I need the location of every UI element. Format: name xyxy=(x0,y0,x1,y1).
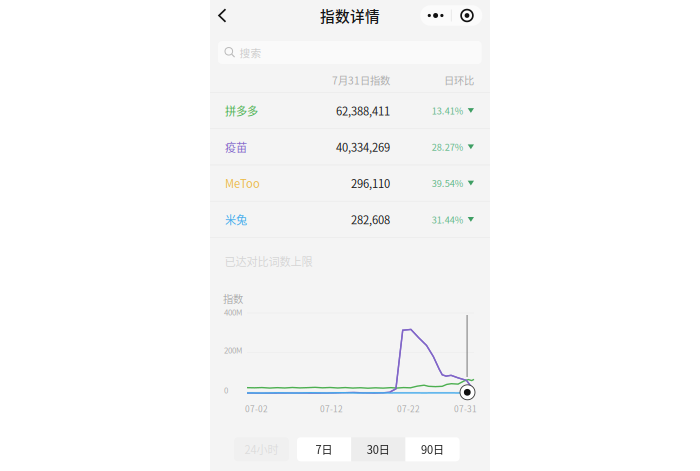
staticText: 指数 xyxy=(223,291,243,306)
button[interactable]: More options and Close xyxy=(420,5,482,26)
staticText: 28.27% xyxy=(432,140,463,153)
staticText: 296,110 xyxy=(351,175,390,191)
button[interactable]: MeToo xyxy=(210,165,490,201)
staticText: 282,608 xyxy=(351,211,390,227)
button[interactable]: 24小时 xyxy=(234,437,289,461)
button[interactable]: 拼多多 xyxy=(210,92,490,128)
staticText: 90日 xyxy=(421,441,444,457)
staticText: 62,388,411 xyxy=(336,102,390,119)
button[interactable]: 米兔 xyxy=(210,201,490,237)
staticText: 米兔 xyxy=(225,211,247,227)
staticText: 07-22 xyxy=(397,402,420,415)
staticText: 疫苗 xyxy=(225,139,247,155)
staticText: 07-12 xyxy=(320,402,343,415)
button[interactable]: 90日 xyxy=(405,437,460,461)
staticText: 7月31日指数 xyxy=(332,73,390,87)
staticText: 日环比 xyxy=(444,73,474,87)
button[interactable]: Back xyxy=(210,0,239,31)
staticText: 40,334,269 xyxy=(336,139,390,155)
staticText: 39.54% xyxy=(432,176,463,190)
button[interactable]: 7日 xyxy=(297,437,351,461)
staticText: 400M xyxy=(224,306,242,318)
staticText: 07-31 xyxy=(454,402,477,415)
button[interactable]: 搜索 xyxy=(218,41,482,64)
staticText: 搜索 xyxy=(239,45,261,60)
staticText: 31.44% xyxy=(432,213,463,226)
staticText: 已达对比词数上限 xyxy=(224,253,312,269)
staticText: MeToo xyxy=(225,175,260,191)
button[interactable]: 30日 xyxy=(351,437,405,461)
staticText: 200M xyxy=(224,344,242,356)
staticText: 拼多多 xyxy=(225,102,258,119)
staticText: 13.41% xyxy=(432,104,463,117)
staticText: 24小时 xyxy=(244,441,278,457)
button[interactable]: 疫苗 xyxy=(210,128,490,165)
staticText: 30日 xyxy=(367,441,390,457)
staticText: 指数详情 xyxy=(320,5,380,26)
staticText: 7日 xyxy=(316,441,333,457)
staticText: 07-02 xyxy=(245,402,268,415)
staticText: 0 xyxy=(224,384,228,396)
